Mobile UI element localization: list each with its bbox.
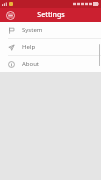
button[interactable]: Open navigation menu	[5, 10, 16, 21]
button[interactable]: System	[0, 22, 101, 38]
staticText: System	[22, 26, 43, 34]
staticText: Settings	[37, 10, 65, 20]
button[interactable]: About	[0, 56, 101, 72]
staticText: About	[22, 60, 40, 68]
button[interactable]: Help	[0, 39, 101, 55]
staticText: Help	[22, 43, 36, 51]
